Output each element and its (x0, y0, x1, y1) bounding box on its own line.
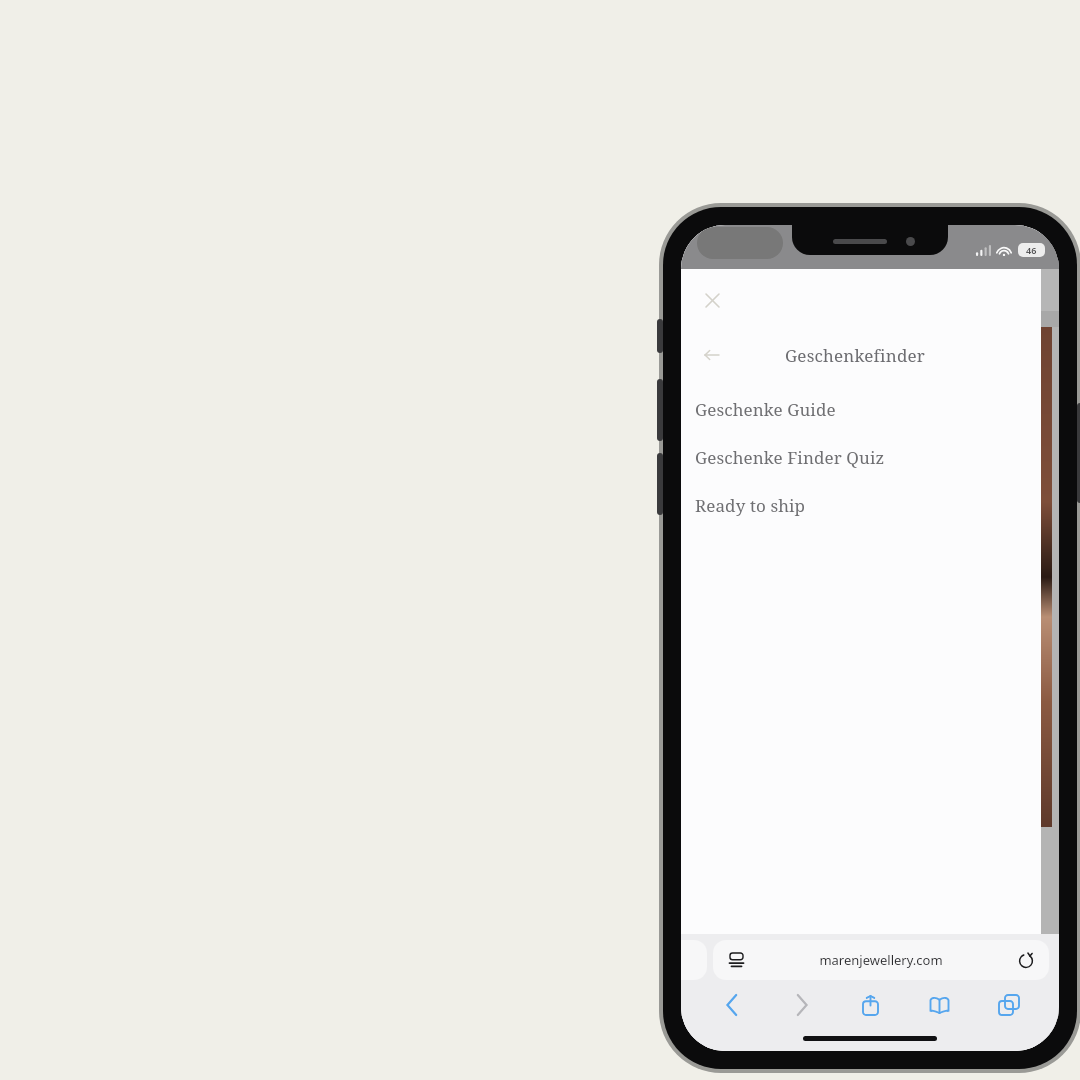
button[interactable]: Page settings (713, 940, 1049, 980)
staticText: Geschenke Finder Quiz (695, 446, 885, 469)
button[interactable]: Close (695, 283, 729, 317)
staticText: marenjewellery.com (819, 951, 943, 969)
button[interactable]: Back (697, 986, 767, 1024)
button[interactable]: Share (836, 986, 905, 1024)
button[interactable]: Forward (767, 986, 836, 1024)
staticText: Ready to ship (695, 494, 806, 517)
staticText: Geschenke Guide (695, 398, 836, 421)
button[interactable]: Reload (1015, 949, 1037, 971)
staticText: Geschenkefinder (785, 344, 926, 367)
button[interactable]: Geschenke Guide (681, 385, 1041, 433)
button[interactable]: Tabs (974, 986, 1043, 1024)
staticText: 46 (1026, 244, 1037, 256)
button[interactable]: Page settings (725, 949, 747, 971)
staticText: EN (727, 985, 741, 999)
button[interactable]: Ready to ship (681, 481, 1041, 529)
button[interactable]: Bookmarks (905, 986, 974, 1024)
button[interactable]: EN (727, 985, 741, 999)
button[interactable]: Geschenke Finder Quiz (681, 433, 1041, 481)
button[interactable]: Back (691, 335, 731, 375)
